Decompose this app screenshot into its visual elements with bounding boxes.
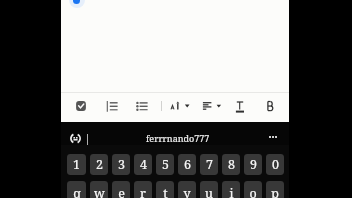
staticText: 2 bbox=[96, 156, 103, 173]
staticText: 8 bbox=[228, 156, 235, 173]
button[interactable]: More options bbox=[269, 135, 278, 138]
button[interactable]: 5 bbox=[156, 154, 174, 175]
button[interactable]: Text colour bbox=[229, 97, 251, 115]
button[interactable]: w bbox=[90, 181, 108, 198]
button[interactable]: 4 bbox=[134, 154, 152, 175]
button[interactable]: Alignment bbox=[199, 97, 225, 115]
button[interactable]: 3 bbox=[112, 154, 130, 175]
staticText: r bbox=[140, 185, 146, 198]
staticText: 1 bbox=[73, 156, 80, 173]
button[interactable]: y bbox=[178, 181, 196, 198]
staticText: p bbox=[271, 185, 279, 198]
button[interactable]: Numbered list bbox=[101, 97, 123, 115]
button[interactable]: 6 bbox=[178, 154, 196, 175]
button[interactable]: e bbox=[112, 181, 130, 198]
button[interactable]: 7 bbox=[200, 154, 218, 175]
button[interactable]: Text size bbox=[168, 97, 194, 115]
staticText: ferrrnando777 bbox=[146, 132, 210, 144]
button[interactable]: p bbox=[266, 181, 284, 198]
button[interactable]: u bbox=[200, 181, 218, 198]
button[interactable]: Bulleted list bbox=[131, 97, 153, 115]
staticText: o bbox=[249, 185, 257, 198]
staticText: 0 bbox=[272, 156, 279, 173]
staticText: y bbox=[183, 185, 191, 198]
staticText: 6 bbox=[184, 156, 191, 173]
staticText: 5 bbox=[162, 156, 169, 173]
staticText: 3 bbox=[118, 156, 125, 173]
staticText: t bbox=[163, 185, 168, 198]
button[interactable]: 0 bbox=[266, 154, 284, 175]
button[interactable]: i bbox=[222, 181, 240, 198]
staticText: q bbox=[73, 185, 81, 198]
staticText: e bbox=[118, 185, 125, 198]
button[interactable]: q bbox=[67, 181, 86, 198]
button[interactable]: Checklist bbox=[70, 97, 92, 115]
button[interactable]: t bbox=[156, 181, 174, 198]
button[interactable]: 8 bbox=[222, 154, 240, 175]
staticText: 4 bbox=[140, 156, 147, 173]
staticText: 7 bbox=[206, 156, 213, 173]
staticText: u bbox=[205, 185, 213, 198]
button[interactable]: 1 bbox=[67, 154, 86, 175]
button[interactable]: 2 bbox=[90, 154, 108, 175]
button[interactable]: r bbox=[134, 181, 152, 198]
staticText: w bbox=[94, 185, 105, 198]
button[interactable]: Emoji bbox=[70, 133, 81, 144]
button[interactable]: o bbox=[244, 181, 262, 198]
staticText: 9 bbox=[250, 156, 257, 173]
staticText: i bbox=[229, 185, 234, 198]
button[interactable]: 9 bbox=[244, 154, 262, 175]
button[interactable]: Bold bbox=[260, 97, 282, 115]
